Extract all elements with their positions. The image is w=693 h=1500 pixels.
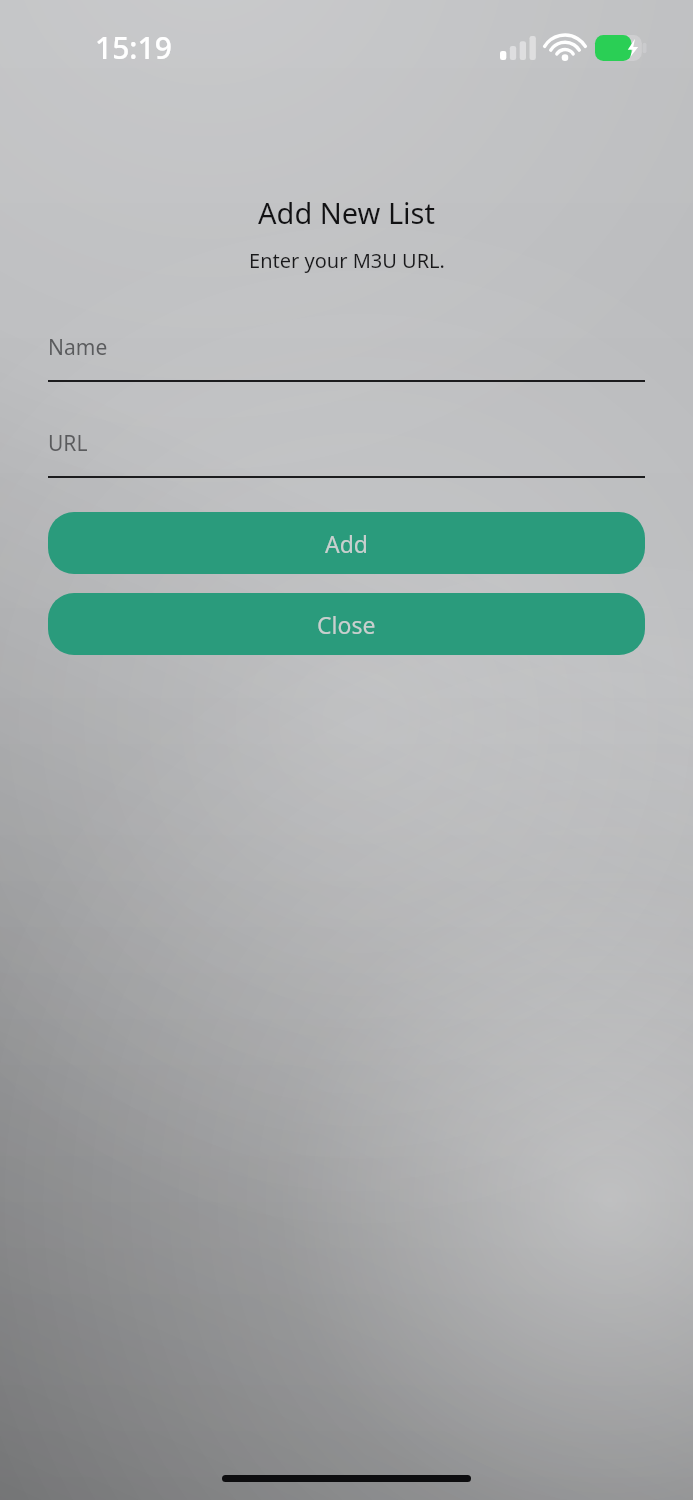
staticText: Add: [325, 528, 368, 559]
staticText: Add New List: [258, 193, 435, 232]
other: Wi-Fi: [549, 36, 581, 60]
button[interactable]: URL: [48, 421, 645, 478]
other: Battery 73 percent, charging: [595, 35, 647, 61]
staticText: Enter your M3U URL.: [249, 247, 445, 274]
other: Cellular signal: [500, 36, 533, 60]
button[interactable]: Close: [48, 593, 645, 655]
staticText: URL: [48, 429, 88, 458]
staticText: 15:19: [95, 27, 172, 68]
button[interactable]: Add: [48, 512, 645, 574]
staticText: Close: [317, 609, 376, 640]
staticText: Name: [48, 333, 108, 362]
button[interactable]: Name: [48, 325, 645, 382]
